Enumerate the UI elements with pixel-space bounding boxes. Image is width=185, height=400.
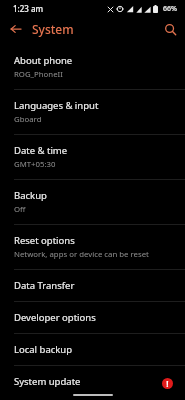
button[interactable]: Developer options [0, 302, 185, 334]
button[interactable]: Local backup [0, 334, 185, 366]
staticText: Gboard [14, 114, 42, 125]
staticText: ! [166, 378, 169, 389]
button[interactable]: System update [0, 366, 185, 400]
button[interactable]: Back [7, 20, 25, 38]
staticText: System [32, 21, 74, 37]
button[interactable]: Date & time [0, 135, 185, 180]
staticText: Data Transfer [14, 279, 75, 292]
staticText: GMT+05:30 [14, 159, 56, 170]
button[interactable]: Backup [0, 180, 185, 225]
staticText: Date & time [14, 144, 68, 157]
staticText: Local backup [14, 343, 73, 356]
staticText: About phone [14, 54, 73, 67]
button[interactable]: About phone [0, 45, 185, 90]
staticText: System update [14, 375, 81, 388]
button[interactable]: Data Transfer [0, 270, 185, 302]
staticText: Off [14, 204, 26, 215]
button[interactable]: Search [161, 20, 179, 38]
staticText: Backup [14, 189, 47, 202]
staticText: 1:23 am [13, 3, 44, 14]
staticText: Developer options [14, 311, 96, 324]
staticText: Network, apps or device can be reset [14, 249, 149, 260]
button[interactable]: Reset options [0, 225, 185, 270]
staticText: 66% [163, 4, 177, 14]
staticText: Reset options [14, 234, 75, 247]
staticText: Languages & input [14, 99, 99, 112]
staticText: ROG_PhoneII [14, 69, 63, 80]
button[interactable]: Languages & input [0, 90, 185, 135]
